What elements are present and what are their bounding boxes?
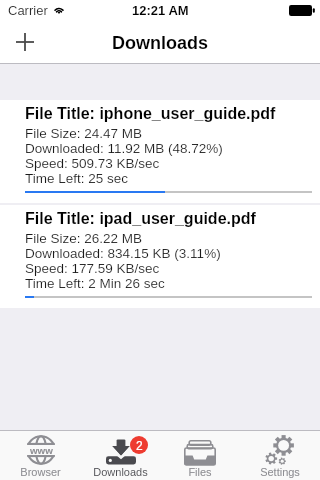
staticText: Settings [260,466,300,478]
staticText: Downloads [112,33,209,53]
button[interactable]: File Title: ipad_user_guide.pdf [0,205,320,308]
staticText: Time Left: 2 Min 26 sec [25,276,165,291]
staticText: File Size: 24.47 MB [25,126,143,141]
button[interactable]: www [0,431,80,480]
staticText: Carrier [8,3,48,18]
staticText: File Title: ipad_user_guide.pdf [25,210,256,228]
button[interactable]: Files [160,431,240,480]
staticText: Browser [20,466,61,478]
staticText: File Title: iphone_user_guide.pdf [25,105,276,123]
button[interactable]: Add download [7,24,43,60]
staticText: Speed: 177.59 KB/sec [25,261,160,276]
staticText: Downloaded: 11.92 MB (48.72%) [25,141,223,156]
button[interactable]: File Title: iphone_user_guide.pdf [0,100,320,203]
staticText: Speed: 509.73 KB/sec [25,156,160,171]
staticText: www [30,445,53,456]
staticText: File Size: 26.22 MB [25,231,143,246]
staticText: Downloads [93,466,148,478]
staticText: 12:21 AM [132,3,189,18]
button[interactable]: Settings [240,431,320,480]
staticText: Time Left: 25 sec [25,171,129,186]
staticText: Downloaded: 834.15 KB (3.11%) [25,246,221,261]
button[interactable]: 2 [80,431,160,480]
staticText: 2 [136,439,143,452]
staticText: Files [188,466,212,478]
